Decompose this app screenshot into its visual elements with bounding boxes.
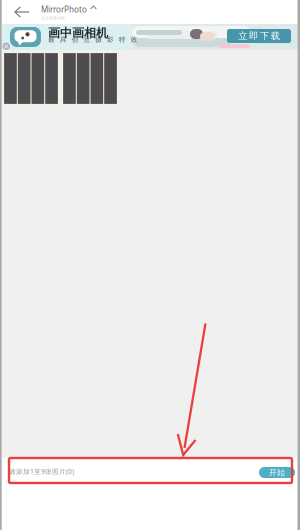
staticText: MirrorPhoto	[41, 4, 87, 15]
staticText: 具	[60, 35, 67, 44]
staticText: 载	[271, 30, 280, 42]
staticText: 摄	[95, 35, 102, 44]
staticText: 影	[107, 35, 114, 44]
button[interactable]: Close ad	[3, 43, 10, 50]
staticText: 画中画相机	[48, 26, 108, 40]
staticText: 立	[238, 30, 247, 42]
button[interactable]: Photo template	[3, 52, 59, 105]
staticText: 效	[131, 35, 138, 44]
button[interactable]: 开始	[259, 467, 295, 478]
staticText: 创	[72, 35, 79, 44]
staticText: 点击查看详情	[41, 16, 65, 20]
button[interactable]: Back	[8, 0, 36, 24]
button[interactable]: Photo template	[62, 52, 118, 105]
staticText: 请添加1至9张照片(0)	[9, 467, 74, 476]
staticText: 意	[83, 35, 90, 44]
staticText: 最	[48, 35, 55, 44]
staticText: 下	[260, 30, 269, 42]
staticText: 特	[119, 35, 126, 44]
button[interactable]: MirrorPhoto	[39, 2, 99, 22]
staticText: 即	[249, 30, 258, 42]
staticText: 开始	[269, 468, 285, 477]
button[interactable]: 立	[227, 29, 291, 43]
